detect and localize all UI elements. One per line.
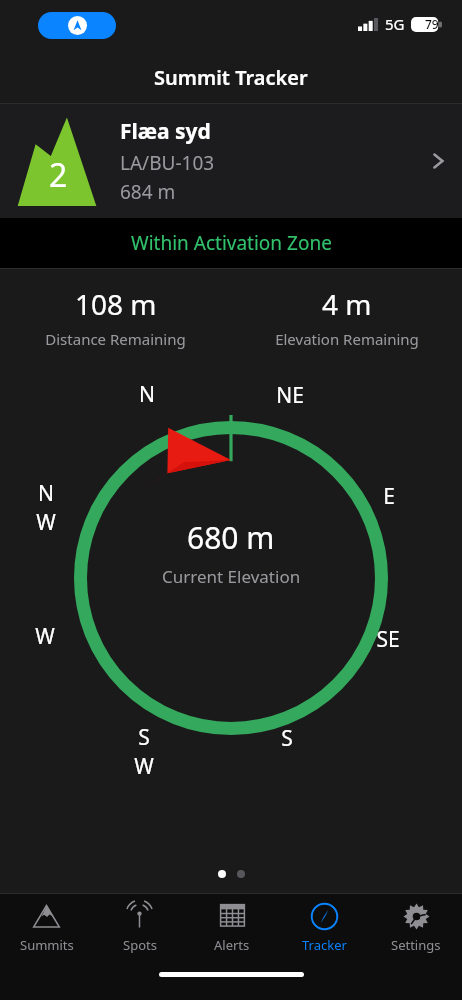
staticText: 79	[425, 16, 439, 32]
staticText: NW	[32, 479, 60, 537]
staticText: Summits	[20, 936, 74, 954]
staticText: 108 m	[75, 285, 157, 323]
button[interactable]: Settings	[370, 894, 462, 954]
staticText: Alerts	[214, 936, 250, 954]
button[interactable]: Tracker	[278, 894, 370, 954]
staticText: 5G	[385, 14, 405, 34]
staticText: Tracker	[302, 936, 347, 954]
staticText: Settings	[391, 936, 441, 954]
button[interactable]: Spots	[93, 894, 186, 954]
other: Location active	[38, 12, 116, 39]
staticText: E	[383, 482, 395, 511]
staticText: SE	[376, 625, 400, 654]
staticText: SW	[130, 723, 158, 781]
staticText: Spots	[123, 936, 157, 954]
staticText: 684 m	[120, 179, 176, 205]
staticText: Flæa syd	[120, 117, 211, 146]
button[interactable]: Summits	[0, 894, 93, 954]
staticText: 4 m	[322, 285, 372, 323]
staticText: Summit Tracker	[154, 64, 308, 91]
staticText: Elevation Remaining	[275, 329, 419, 349]
staticText: N	[139, 380, 155, 409]
staticText: Distance Remaining	[45, 329, 186, 349]
staticText: 2	[49, 153, 68, 197]
staticText: Current Elevation	[162, 565, 301, 588]
staticText: S	[281, 724, 293, 753]
button[interactable]: Alerts	[186, 894, 278, 954]
staticText: LA/BU-103	[120, 150, 215, 176]
button[interactable]: 2	[0, 104, 462, 218]
staticText: 680 m	[187, 517, 275, 558]
staticText: Within Activation Zone	[131, 230, 332, 256]
staticText: NE	[276, 381, 304, 410]
staticText: W	[35, 622, 55, 651]
